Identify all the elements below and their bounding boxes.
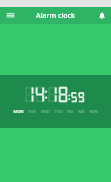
staticText: MON xyxy=(13,109,24,114)
button[interactable]: MON xyxy=(13,109,24,114)
button[interactable]: SAT xyxy=(78,109,85,114)
button[interactable]: FRI xyxy=(67,109,73,114)
button[interactable]: THU xyxy=(54,109,63,114)
button[interactable]: MON xyxy=(0,75,111,128)
button[interactable]: Alarm notifications xyxy=(95,9,108,22)
staticText: TUE xyxy=(28,109,36,114)
button[interactable]: TUE xyxy=(28,109,36,114)
button[interactable]: WED xyxy=(41,109,50,114)
staticText: FRI xyxy=(67,109,73,114)
staticText: SAT xyxy=(78,109,85,114)
staticText: THU xyxy=(54,109,63,114)
staticText: WED xyxy=(41,109,50,114)
staticText: SUN xyxy=(89,109,98,114)
button[interactable]: SUN xyxy=(89,109,98,114)
button[interactable]: Open navigation menu xyxy=(4,9,17,22)
staticText: Alarm clock xyxy=(36,11,75,21)
